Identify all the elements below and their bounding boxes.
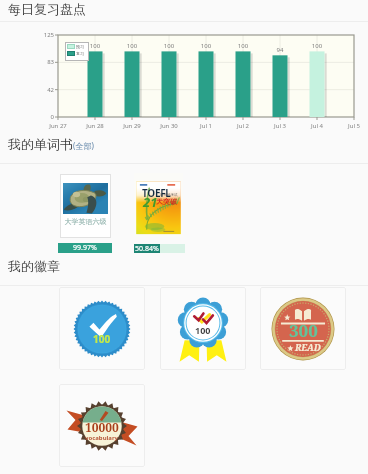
staticText: Jul 5: [337, 122, 368, 130]
button[interactable]: 100 medal badge: [160, 287, 246, 370]
staticText: vocabulary: [85, 434, 119, 442]
staticText: 50.84%: [135, 244, 159, 253]
button[interactable]: 10000 vocabulary badge: [59, 384, 145, 467]
staticText: 21: [143, 193, 158, 211]
staticText: (全部): [73, 140, 94, 151]
staticText: Jul 4: [300, 122, 334, 130]
staticText: Jul 3: [263, 122, 297, 130]
staticText: 100: [305, 42, 329, 50]
button[interactable]: TOEFL: [134, 173, 183, 237]
staticText: 复习: [76, 51, 84, 56]
button[interactable]: 大学英语六级: [60, 174, 111, 238]
staticText: TOEFL: [142, 186, 171, 200]
staticText: 我的徽章: [8, 258, 60, 274]
staticText: 每日复习盘点: [8, 1, 86, 17]
staticText: 大学英语六级: [60, 217, 111, 226]
button[interactable]: 300 read badge: [260, 287, 346, 370]
staticText: 125: [32, 31, 54, 39]
staticText: 99.97%: [73, 243, 97, 253]
staticText: 0: [32, 113, 54, 121]
staticText: 新托福考试: [160, 193, 178, 197]
staticText: 83: [32, 58, 54, 66]
staticText: 10000: [85, 419, 119, 435]
staticText: 天突破: [156, 197, 177, 206]
staticText: 100: [93, 332, 111, 346]
staticText: 100: [194, 42, 218, 50]
staticText: 100: [157, 42, 181, 50]
staticText: 预习: [76, 44, 84, 49]
staticText: 100: [195, 324, 211, 336]
staticText: 100: [83, 42, 107, 50]
staticText: Jun 28: [78, 122, 112, 130]
staticText: READ: [295, 341, 321, 353]
staticText: 300: [289, 319, 318, 342]
staticText: Jul 2: [226, 122, 260, 130]
staticText: 我的单词书: [8, 136, 73, 152]
staticText: 100: [120, 42, 144, 50]
staticText: Jun 29: [115, 122, 149, 130]
staticText: Jun 27: [41, 122, 75, 130]
staticText: 100: [231, 42, 255, 50]
staticText: 42: [32, 86, 54, 94]
staticText: 94: [268, 46, 292, 54]
button[interactable]: 100 checks badge: [59, 287, 145, 370]
staticText: Jun 30: [152, 122, 186, 130]
staticText: Jul 1: [189, 122, 223, 130]
